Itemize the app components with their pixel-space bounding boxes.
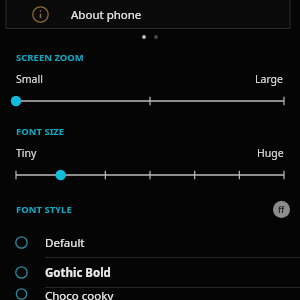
staticText: Choco cooky — [45, 288, 114, 300]
button[interactable]: Default — [0, 228, 300, 257]
button[interactable] — [0, 92, 300, 110]
staticText: Huge — [257, 146, 284, 160]
staticText: About phone — [71, 7, 142, 23]
button[interactable]: Gothic Bold — [0, 258, 300, 287]
button[interactable]: Choco cooky — [0, 288, 300, 300]
staticText: SCREEN ZOOM — [16, 51, 84, 64]
staticText: FONT SIZE — [16, 125, 65, 138]
button[interactable] — [0, 166, 300, 184]
staticText: Small — [16, 72, 43, 86]
button[interactable]: About phone — [6, 0, 290, 29]
button[interactable]: Font style preview — [273, 201, 290, 218]
staticText: Default — [45, 235, 85, 251]
staticText: Large — [255, 72, 284, 86]
staticText: FONT STYLE — [16, 203, 72, 216]
staticText: Gothic Bold — [45, 265, 111, 281]
staticText: Tiny — [16, 146, 37, 160]
staticText: ff — [278, 204, 285, 215]
